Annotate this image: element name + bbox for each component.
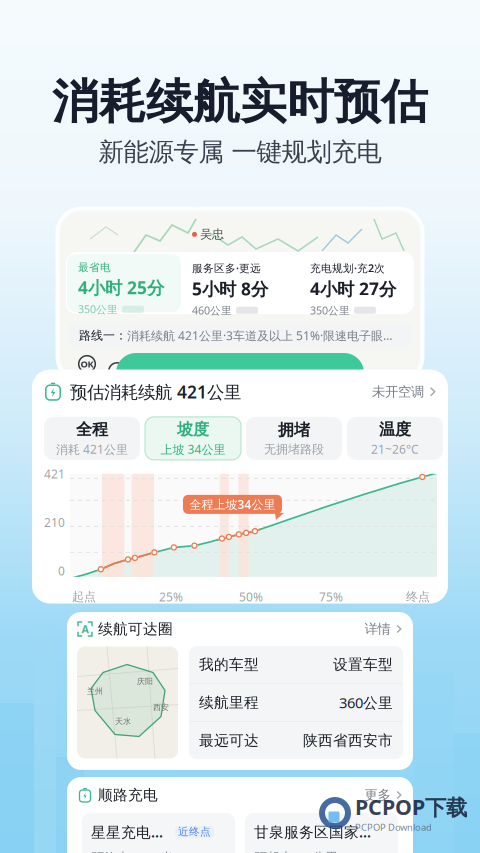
staticText: PCPOP Download (355, 821, 432, 833)
staticText: 50% (239, 589, 263, 605)
button[interactable]: 全程 (44, 417, 140, 460)
staticText: 预估消耗续航 421公里 (70, 380, 241, 403)
staticText: PCPOP下载 (355, 793, 467, 821)
staticText: 天水 (115, 716, 131, 726)
staticText: 吴忠 (200, 227, 224, 242)
staticText: 350公里 (310, 303, 350, 317)
staticText: 新能源专属 一键规划充电 (98, 136, 381, 167)
staticText: 庆阳 (137, 676, 153, 686)
button[interactable]: 温度 (347, 417, 443, 460)
staticText: 详情 (365, 621, 391, 637)
staticText: 起点 (72, 589, 96, 604)
staticText: 最远可达 (199, 731, 259, 749)
staticText: 0 (58, 563, 65, 579)
button[interactable]: 甘泉服务区国家... (245, 813, 398, 853)
staticText: 消耗 421公里 (56, 441, 128, 457)
staticText: 最省电 (78, 261, 111, 274)
staticText: 终点 (406, 589, 430, 604)
button[interactable]: 最远可达 (189, 722, 403, 759)
staticText: 西安 (153, 702, 169, 712)
staticText: 75% (319, 589, 343, 605)
staticText: 续航里程 (199, 693, 259, 711)
staticText: 兰州 (87, 686, 103, 696)
staticText: 210 (44, 514, 65, 530)
staticText: 距终点 330 米 (91, 849, 173, 853)
staticText: 温度 (379, 420, 411, 439)
button[interactable]: 未开空调 (372, 379, 436, 404)
staticText: 421 (44, 466, 65, 482)
button[interactable]: A (67, 612, 413, 646)
staticText: 拥堵 (278, 420, 310, 440)
staticText: 路线一： (79, 328, 127, 343)
staticText: 21~26°C (371, 441, 419, 457)
staticText: 陕西省西安市 (303, 731, 393, 749)
button[interactable]: 我的车型 (189, 646, 403, 683)
staticText: 充电规划·充2次 (310, 261, 385, 275)
staticText: 距起点 21公里 (254, 848, 338, 853)
button[interactable]: 坡度 (145, 417, 241, 460)
button[interactable]: 续航里程 (189, 684, 403, 721)
button[interactable]: 星星充电汽车... (82, 813, 235, 853)
staticText: 我的车型 (199, 655, 259, 673)
staticText: 全程上坡34公里 (189, 496, 275, 512)
staticText: 5小时 8分 (192, 277, 268, 300)
staticText: 设置车型 (333, 655, 393, 673)
staticText: 上坡 34公里 (160, 441, 225, 457)
staticText: 460公里 (192, 303, 232, 317)
staticText: 无拥堵路段 (264, 442, 324, 456)
staticText: 360公里 (339, 693, 393, 712)
staticText: 顺路充电 (98, 786, 158, 804)
staticText: 消耗续航实时预估 (52, 73, 428, 131)
staticText: 近终点 (178, 825, 211, 838)
staticText: 星星充电汽车... (91, 822, 171, 842)
staticText: 消耗续航 421公里·3车道及以上 51%·限速电子眼 5... (127, 327, 393, 343)
button[interactable]: 顺路充电 (67, 777, 413, 813)
staticText: 服务区多·更远 (192, 261, 261, 275)
staticText: 未开空调 (372, 383, 424, 400)
staticText: 25% (159, 589, 183, 605)
staticText: OK (80, 358, 93, 370)
staticText: 更多 (365, 787, 391, 803)
staticText: 4小时 27分 (310, 277, 396, 300)
staticText: 350公里 (78, 302, 118, 316)
staticText: 续航可达圈 (98, 620, 173, 638)
staticText: 全程 (76, 420, 108, 439)
staticText: 4小时 25分 (78, 276, 164, 299)
button[interactable]: 拥堵 (246, 417, 342, 460)
staticText: 坡度 (177, 420, 209, 439)
staticText: 甘泉服务区国家... (254, 822, 371, 841)
staticText: A (81, 622, 88, 636)
